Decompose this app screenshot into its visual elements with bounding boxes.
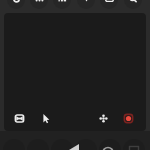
button[interactable]: Rotate	[5, 0, 27, 11]
button[interactable]: More options	[28, 0, 50, 11]
button[interactable]: Expand	[75, 0, 97, 11]
button[interactable]: Pointer	[36, 108, 56, 128]
button[interactable]: Keyboard	[98, 0, 120, 11]
button[interactable]: Back	[64, 142, 80, 150]
button[interactable]: Recent apps	[126, 145, 142, 150]
button[interactable]: Move	[93, 108, 113, 128]
button[interactable]: Fit to screen	[9, 108, 29, 128]
button[interactable]: Signal	[51, 0, 73, 11]
button[interactable]: Home	[100, 143, 116, 150]
button[interactable]: Search	[122, 0, 144, 11]
button[interactable]: Record	[118, 108, 138, 128]
